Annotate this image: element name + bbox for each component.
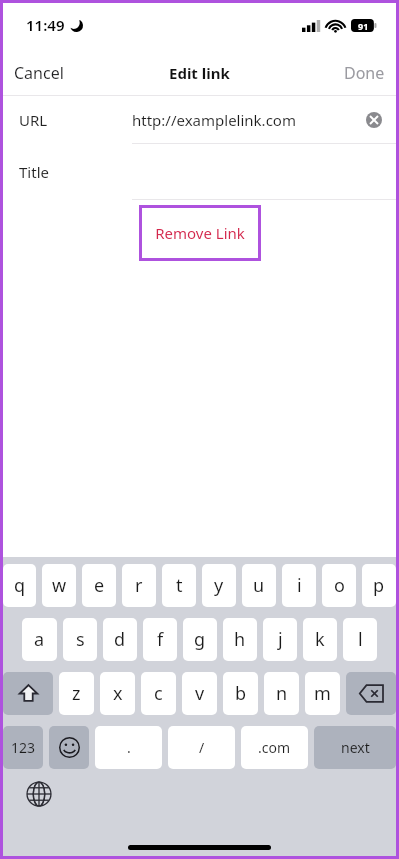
button[interactable]: r (122, 564, 156, 607)
button[interactable]: t (162, 564, 196, 607)
staticText: y (214, 573, 224, 598)
button[interactable]: Done (330, 54, 399, 92)
staticText: 123 (11, 738, 36, 757)
staticText: Edit link (169, 63, 230, 83)
staticText: j (278, 627, 283, 652)
button[interactable]: Cancel (0, 54, 78, 92)
staticText: q (14, 573, 26, 598)
staticText: d (114, 627, 126, 652)
button[interactable]: j (263, 618, 297, 661)
staticText: w (52, 573, 67, 598)
staticText: z (72, 681, 81, 706)
button[interactable]: q (3, 564, 36, 607)
button[interactable]: Switch keyboard language (26, 781, 52, 807)
staticText: Cancel (14, 62, 64, 84)
staticText: s (76, 627, 85, 652)
button[interactable]: w (42, 564, 76, 607)
button[interactable]: next (314, 726, 396, 769)
button[interactable]: b (223, 672, 258, 715)
button[interactable]: z (59, 672, 94, 715)
staticText: 11:49 (26, 15, 65, 35)
staticText: URL (19, 110, 48, 130)
button[interactable]: d (103, 618, 137, 661)
button[interactable]: 123 (3, 726, 43, 769)
staticText: / (199, 738, 205, 757)
staticText: a (34, 627, 45, 652)
staticText: Remove Link (155, 223, 245, 243)
button[interactable]: h (223, 618, 257, 661)
button[interactable]: m (305, 672, 340, 715)
staticText: http://examplelink.com (132, 110, 296, 130)
staticText: o (334, 573, 345, 598)
button[interactable]: x (100, 672, 135, 715)
button[interactable]: e (82, 564, 116, 607)
button[interactable]: .com (241, 726, 308, 769)
staticText: t (176, 573, 183, 598)
button[interactable]: Emoji (49, 726, 89, 769)
button[interactable]: Shift (3, 672, 53, 715)
button[interactable]: s (63, 618, 97, 661)
button[interactable]: Clear text (366, 112, 382, 128)
staticText: 91 (358, 20, 369, 32)
staticText: v (195, 681, 205, 706)
staticText: next (341, 738, 370, 757)
button[interactable]: i (282, 564, 316, 607)
staticText: k (315, 627, 325, 652)
button[interactable]: a (22, 618, 57, 661)
staticText: g (194, 627, 206, 652)
staticText: .com (258, 738, 291, 757)
staticText: h (234, 627, 246, 652)
button[interactable]: n (264, 672, 299, 715)
staticText: e (94, 573, 105, 598)
staticText: f (157, 627, 164, 652)
staticText: r (135, 573, 143, 598)
button[interactable]: o (322, 564, 356, 607)
staticText: n (276, 681, 288, 706)
staticText: b (235, 681, 247, 706)
button[interactable]: Backspace (346, 672, 396, 715)
button[interactable]: / (168, 726, 235, 769)
staticText: . (127, 738, 131, 757)
button[interactable]: g (183, 618, 217, 661)
staticText: c (154, 681, 163, 706)
button[interactable]: p (362, 564, 396, 607)
staticText: u (253, 573, 265, 598)
staticText: m (314, 681, 331, 706)
staticText: l (358, 627, 363, 652)
button[interactable]: l (343, 618, 377, 661)
button[interactable]: u (242, 564, 276, 607)
staticText: Done (344, 62, 385, 84)
button[interactable]: v (182, 672, 217, 715)
button[interactable]: Remove Link (139, 205, 261, 261)
button[interactable]: k (303, 618, 337, 661)
staticText: p (373, 573, 385, 598)
button[interactable]: f (143, 618, 177, 661)
staticText: Title (19, 162, 49, 182)
button[interactable]: . (95, 726, 162, 769)
staticText: x (113, 681, 123, 706)
staticText: i (297, 573, 302, 598)
button[interactable]: c (141, 672, 176, 715)
button[interactable]: y (202, 564, 236, 607)
